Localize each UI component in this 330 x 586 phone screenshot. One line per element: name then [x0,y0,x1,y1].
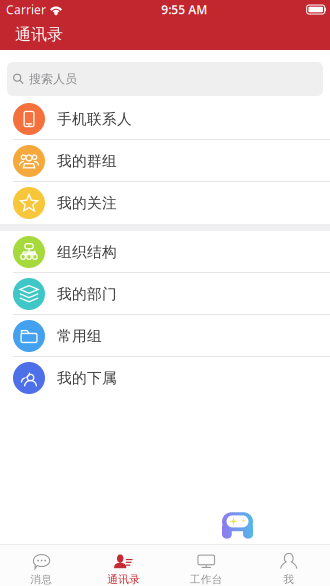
staticText: 消息 [30,573,52,586]
staticText: 9:55 AM [161,1,207,17]
staticText: 我的关注 [57,194,117,212]
button[interactable]: 工作台 [165,545,247,586]
button[interactable]: 我的群组 [0,140,330,182]
staticText: 手机联系人 [57,110,132,128]
button[interactable]: 我的部门 [0,273,330,315]
button[interactable]: 组织结构 [0,231,330,273]
button[interactable]: 消息 [0,545,82,586]
button[interactable]: 常用组 [0,315,330,357]
staticText: 常用组 [57,327,102,345]
button[interactable]: 我的关注 [0,182,330,224]
staticText: 我的群组 [57,152,117,170]
staticText: 我的下属 [57,369,117,387]
button[interactable]: 我 [247,545,330,586]
staticText: 通讯录 [15,25,63,44]
button[interactable]: AI assistant [219,509,256,541]
button[interactable]: 我的下属 [0,357,330,399]
staticText: Carrier [6,1,46,17]
staticText: 我的部门 [57,285,117,303]
staticText: 搜索人员 [29,72,77,86]
staticText: 我 [283,573,294,586]
staticText: 组织结构 [57,243,117,261]
button[interactable]: 手机联系人 [0,98,330,140]
staticText: 工作台 [190,573,223,586]
button[interactable]: 通讯录 [82,545,165,586]
staticText: 通讯录 [107,573,140,586]
